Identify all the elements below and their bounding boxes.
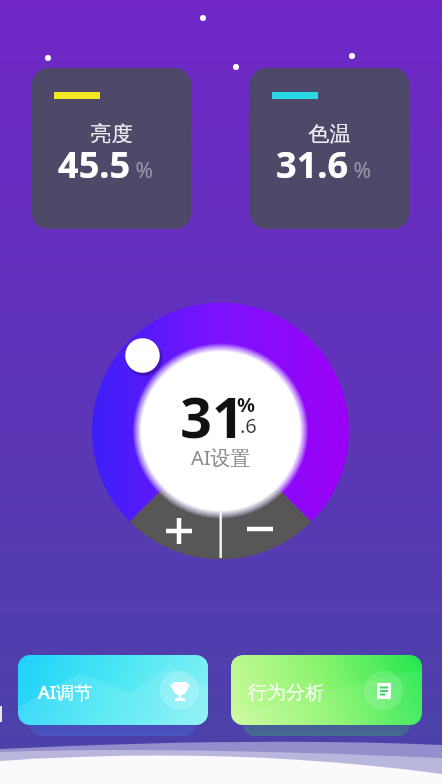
staticText: 行为分析	[248, 681, 324, 705]
button[interactable]	[224, 505, 302, 560]
staticText: AI设置	[191, 444, 251, 471]
button[interactable]	[140, 505, 218, 560]
staticText: %	[237, 391, 256, 418]
staticText: .6	[240, 412, 257, 439]
button[interactable]: 色温	[250, 68, 409, 229]
button[interactable]: 行为分析	[231, 655, 422, 725]
staticText: 亮度	[32, 121, 191, 147]
staticText: AI调节	[38, 680, 93, 705]
button[interactable]: AI调节	[18, 655, 208, 725]
staticText: 31.6 %	[250, 140, 403, 189]
staticText: 31	[180, 378, 245, 454]
staticText: 色温	[250, 121, 409, 147]
button[interactable]: 亮度	[32, 68, 191, 229]
staticText: 45.5 %	[32, 140, 185, 189]
